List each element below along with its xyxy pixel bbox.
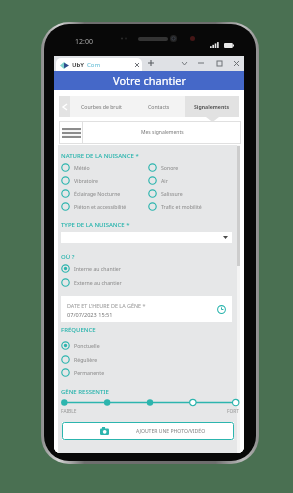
- staticText: Interne au chantier: [74, 265, 121, 272]
- button[interactable]: Air: [148, 174, 168, 186]
- button[interactable]: Menu: [59, 121, 83, 144]
- button[interactable]: UbY: [56, 58, 142, 71]
- button[interactable]: Sonore: [148, 161, 179, 173]
- button[interactable]: Interne au chantier: [61, 262, 121, 274]
- staticText: Piéton et accessibilité: [74, 203, 127, 210]
- staticText: FRÉQUENCE: [61, 326, 96, 334]
- staticText: Ponctuelle: [74, 342, 100, 349]
- staticText: Signalements: [194, 103, 230, 110]
- button[interactable]: Contacts: [134, 96, 184, 117]
- staticText: Com: [87, 61, 101, 69]
- staticText: GÊNE RESSENTIE: [61, 388, 109, 396]
- button[interactable]: Trafic et mobilité: [148, 200, 202, 212]
- staticText: TYPE DE LA NUISANCE *: [61, 221, 130, 229]
- button[interactable]: Salissure: [148, 187, 183, 199]
- button[interactable]: Éclairage Nocturne: [61, 187, 121, 199]
- button[interactable]: Courbes de bruit: [70, 96, 132, 117]
- staticText: DATE ET L'HEURE DE LA GÊNE *: [67, 302, 146, 309]
- staticText: Externe au chantier: [74, 279, 122, 286]
- staticText: FAIBLE: [61, 408, 77, 415]
- button[interactable]: Vibratoire: [61, 174, 98, 186]
- button[interactable]: Tab search: [178, 56, 190, 71]
- staticText: Sonore: [161, 164, 179, 171]
- button[interactable]: DATE ET L'HEURE DE LA GÊNE *: [61, 296, 232, 322]
- button[interactable]: Piéton et accessibilité: [61, 200, 127, 212]
- staticText: Vibratoire: [74, 177, 98, 184]
- button[interactable]: Régulière: [61, 353, 98, 365]
- button[interactable]: Previous tabs: [59, 96, 70, 117]
- staticText: Air: [161, 177, 168, 184]
- staticText: Trafic et mobilité: [161, 203, 202, 210]
- button[interactable]: New tab: [146, 58, 156, 68]
- staticText: 07/07/2023 15:51: [67, 311, 113, 319]
- staticText: FORT: [227, 408, 239, 415]
- staticText: Régulière: [74, 356, 98, 363]
- staticText: Courbes de bruit: [81, 103, 122, 110]
- button[interactable]: AJOUTER UNE PHOTO/VIDÉO: [62, 422, 234, 440]
- button[interactable]: Maximize: [213, 56, 225, 71]
- button[interactable]: Ponctuelle: [61, 339, 100, 351]
- button[interactable]: Minimize: [195, 56, 207, 71]
- button[interactable]: Signalements: [185, 96, 239, 117]
- staticText: Météo: [74, 164, 90, 171]
- button[interactable]: Externe au chantier: [61, 276, 122, 288]
- button[interactable]: Permanente: [61, 366, 105, 378]
- staticText: NATURE DE LA NUISANCE *: [61, 152, 139, 160]
- staticText: OÙ ?: [61, 253, 75, 261]
- button[interactable]: Close tab: [132, 60, 142, 70]
- button[interactable]: [61, 232, 232, 243]
- staticText: Contacts: [148, 103, 170, 110]
- staticText: Mes signalements: [141, 129, 184, 136]
- button[interactable]: Close window: [230, 56, 242, 71]
- staticText: 12:00: [75, 37, 93, 47]
- staticText: Salissure: [161, 190, 183, 197]
- staticText: AJOUTER UNE PHOTO/VIDÉO: [136, 428, 206, 435]
- staticText: UbY: [72, 61, 85, 69]
- staticText: Permanente: [74, 369, 105, 376]
- button[interactable]: Météo: [61, 161, 90, 173]
- staticText: Votre chantier: [113, 73, 186, 88]
- staticText: Éclairage Nocturne: [74, 190, 121, 197]
